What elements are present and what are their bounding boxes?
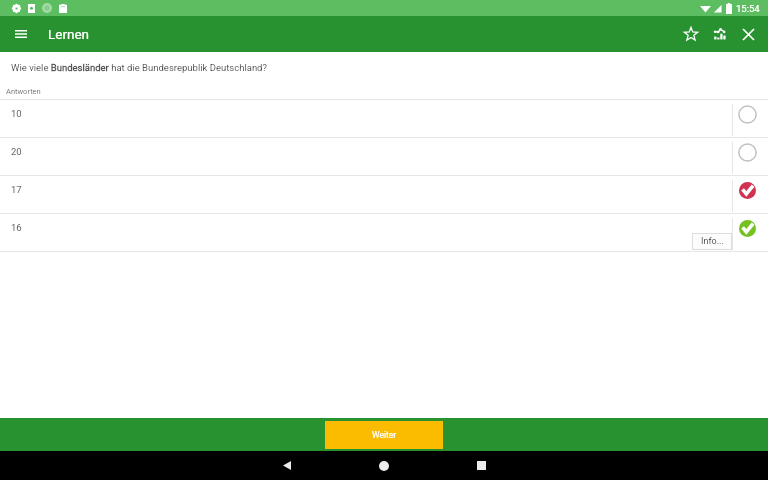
button[interactable]: Back bbox=[267, 451, 307, 480]
staticText: 16 bbox=[11, 222, 22, 233]
button[interactable]: 20 bbox=[0, 138, 768, 175]
button[interactable]: 10 bbox=[0, 100, 768, 137]
button[interactable]: Favorite bbox=[677, 16, 705, 52]
button[interactable]: 16 bbox=[0, 214, 768, 251]
button[interactable]: Weiter bbox=[325, 421, 443, 449]
button[interactable]: 17 bbox=[0, 176, 768, 213]
button[interactable]: Close bbox=[734, 16, 763, 52]
staticText: Weiter bbox=[372, 430, 397, 440]
staticText: Wie viele Bundesländer hat die Bundesrep… bbox=[11, 62, 768, 73]
staticText: 17 bbox=[11, 184, 22, 195]
staticText: Info... bbox=[701, 236, 724, 247]
staticText: 20 bbox=[11, 146, 22, 157]
button[interactable]: Menu bbox=[0, 16, 42, 52]
button[interactable]: Recent apps bbox=[461, 451, 501, 480]
staticText: 10 bbox=[11, 108, 22, 119]
button[interactable]: Home bbox=[364, 451, 404, 480]
staticText: 15:54 bbox=[736, 3, 760, 14]
staticText: Lernen bbox=[48, 26, 90, 42]
button[interactable]: Statistics bbox=[705, 16, 734, 52]
button[interactable]: Info... bbox=[692, 233, 732, 250]
staticText: Antworten bbox=[6, 87, 41, 96]
